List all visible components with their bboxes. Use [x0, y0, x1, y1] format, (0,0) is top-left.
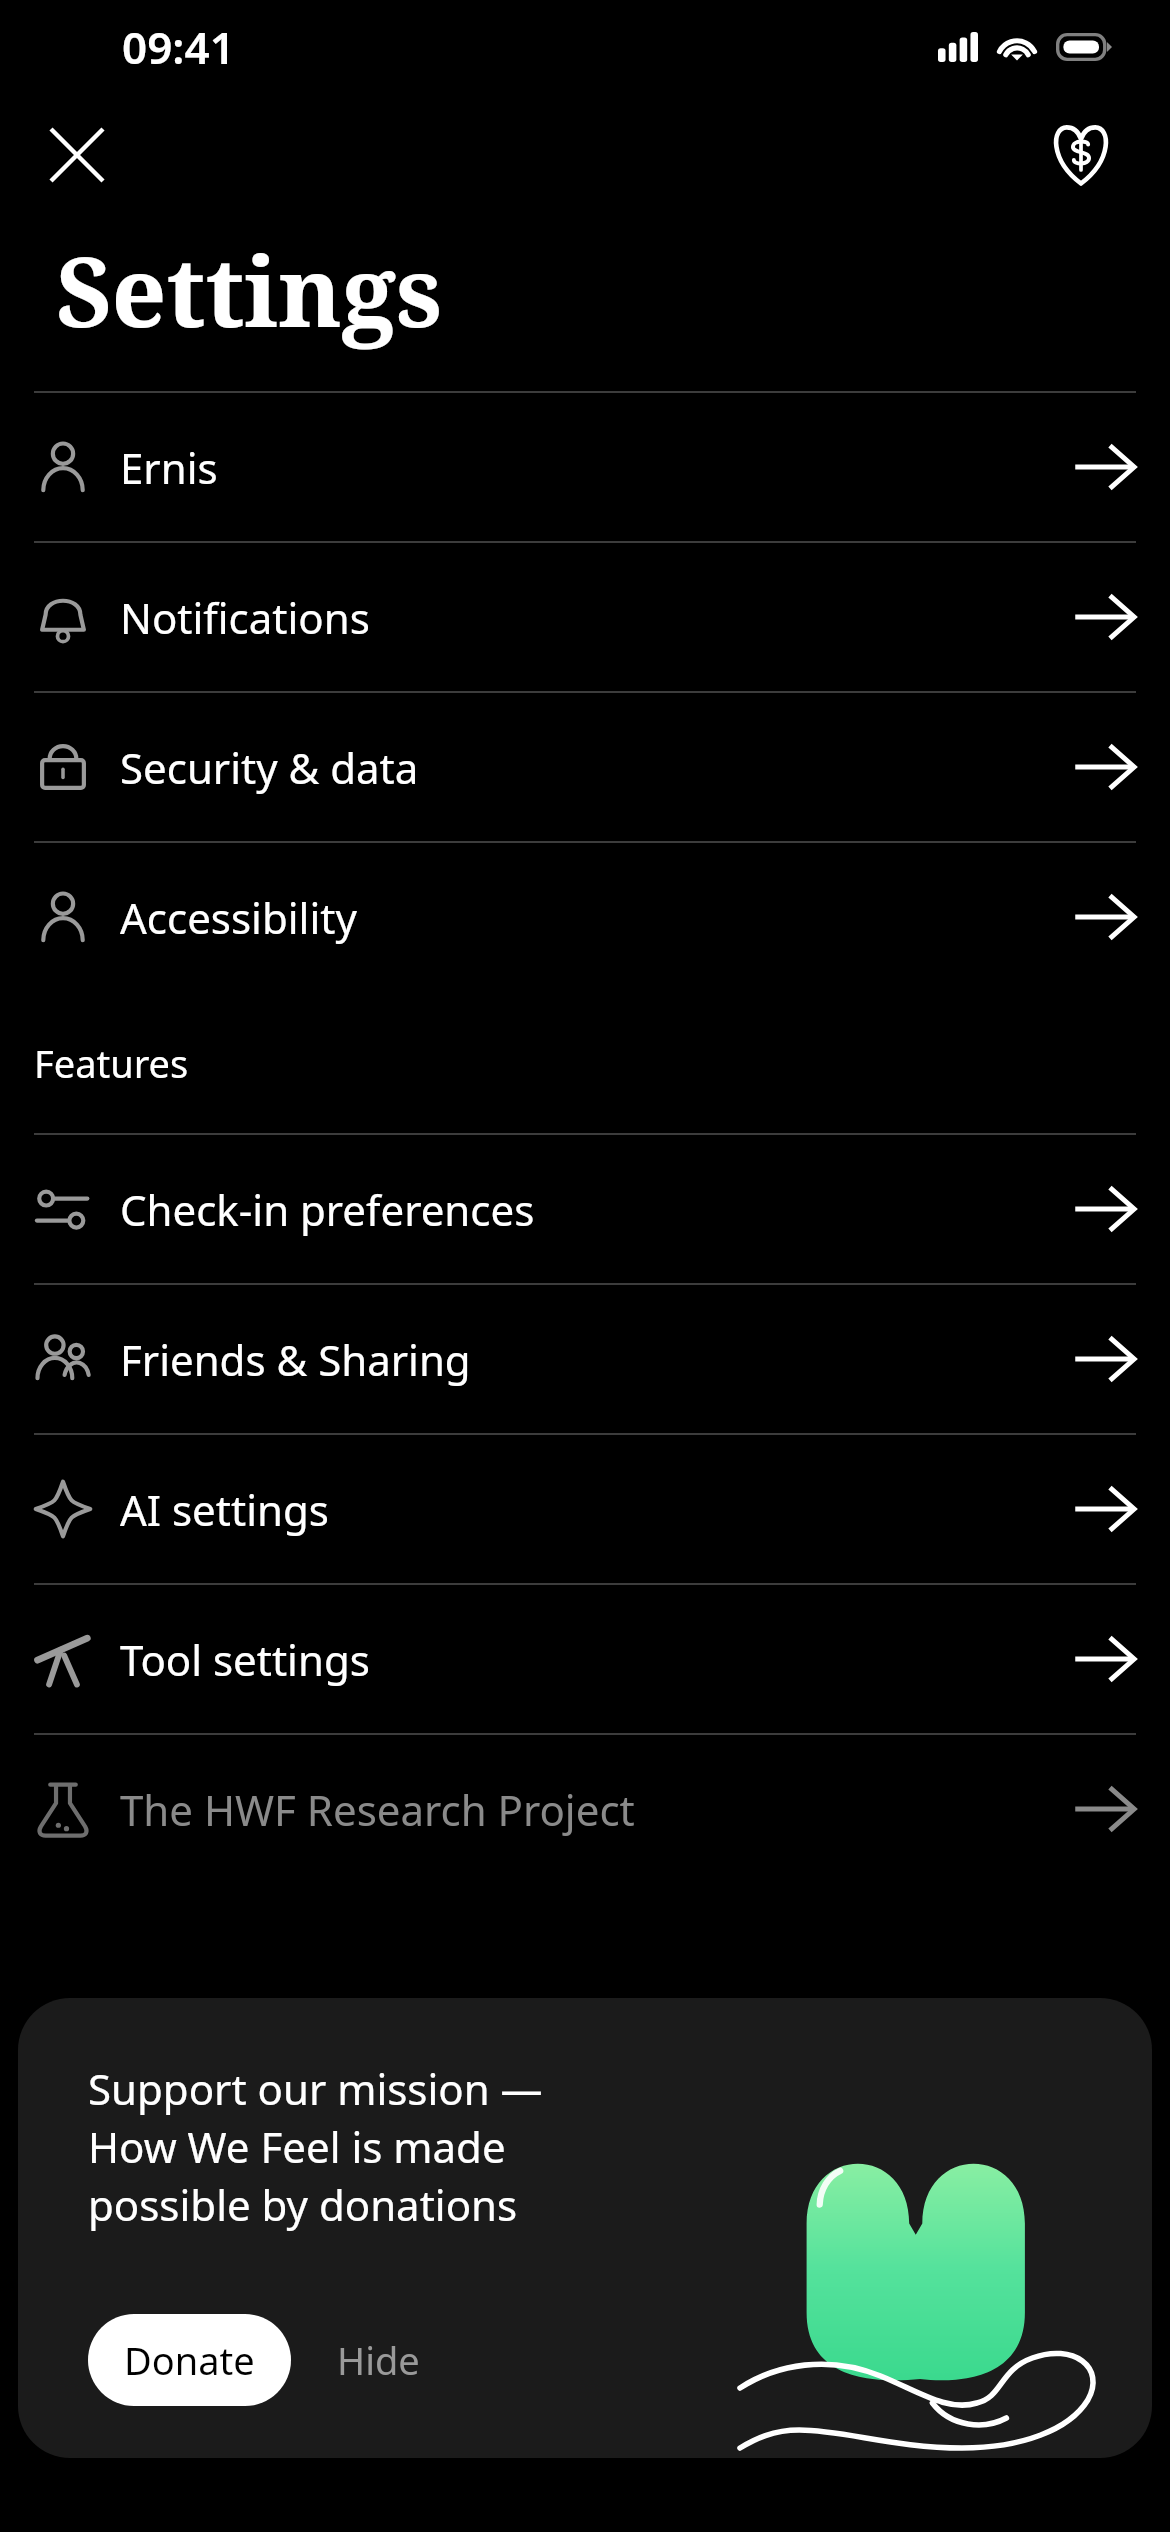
button[interactable]: Accessibility	[34, 843, 1136, 991]
button[interactable]: Friends & Sharing	[34, 1285, 1136, 1433]
button[interactable]: Close	[32, 110, 122, 200]
button[interactable]: AI settings	[34, 1435, 1136, 1583]
staticText: 09:41	[122, 17, 235, 77]
staticText: Friends & Sharing	[120, 1331, 1074, 1388]
staticText: Check-in preferences	[120, 1181, 1074, 1238]
staticText: Notifications	[120, 589, 1074, 646]
button[interactable]: Donate	[88, 2314, 291, 2406]
button[interactable]: The HWF Research Project	[34, 1735, 1136, 1883]
button[interactable]: Hide	[327, 2320, 430, 2400]
staticText: Hide	[337, 2334, 420, 2386]
button[interactable]: Security & data	[34, 693, 1136, 841]
staticText: Tool settings	[120, 1631, 1074, 1688]
button[interactable]: Notifications	[34, 543, 1136, 691]
button[interactable]: Ernis	[34, 393, 1136, 541]
staticText: The HWF Research Project	[120, 1781, 1074, 1838]
staticText: Ernis	[120, 439, 1074, 496]
staticText: Features	[34, 1037, 189, 1089]
staticText: Accessibility	[120, 889, 1074, 946]
button[interactable]: Check-in preferences	[34, 1135, 1136, 1283]
staticText: AI settings	[120, 1481, 1074, 1538]
staticText: Security & data	[120, 739, 1074, 796]
button[interactable]: Tool settings	[34, 1585, 1136, 1733]
staticText: Settings	[56, 224, 443, 355]
staticText: Support our mission — How We Feel is mad…	[88, 2060, 543, 2233]
button[interactable]: Donate	[1036, 110, 1126, 200]
staticText: Donate	[124, 2334, 255, 2386]
